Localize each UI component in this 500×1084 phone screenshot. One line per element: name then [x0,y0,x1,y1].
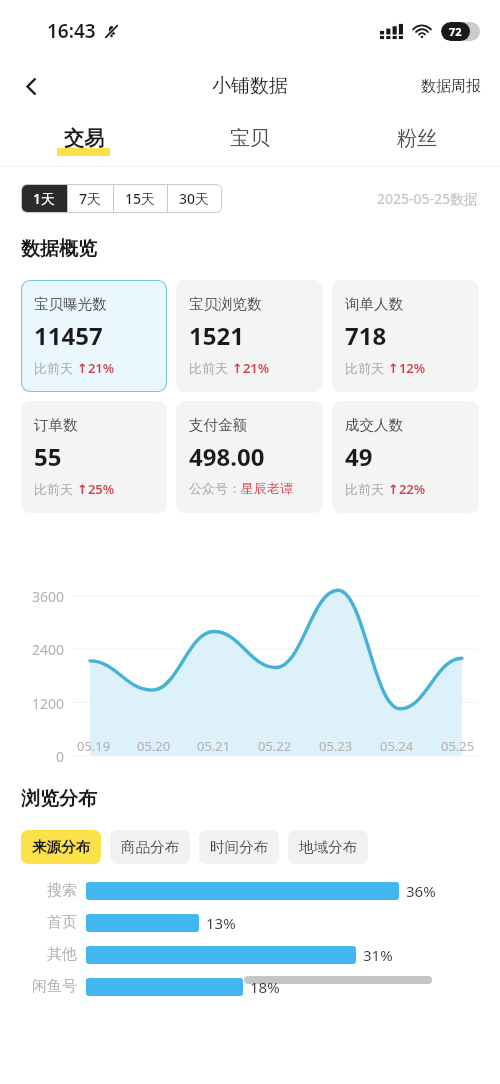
button[interactable]: 7天 [68,185,113,212]
staticText: 05.23 [319,737,353,755]
staticText: 36% [406,881,436,901]
staticText: 粉丝 [397,126,437,151]
staticText: 05.25 [441,737,475,755]
staticText: 7天 [79,189,102,208]
button[interactable]: 来源分布 [21,830,101,864]
button[interactable]: 宝贝曝光数 [21,280,167,392]
staticText: 55 [34,440,62,473]
button[interactable]: 商品分布 [110,830,190,864]
staticText: 其他 [0,945,77,964]
staticText: 小铺数据 [212,74,288,98]
staticText: 05.20 [137,737,171,755]
staticText: 闲鱼号 [0,977,77,996]
button[interactable]: 时间分布 [199,830,279,864]
staticText: 公众号： [189,480,241,496]
staticText: 比前天 [34,359,77,377]
button[interactable]: 支付金额 [176,401,323,513]
staticText: 2400 [0,640,64,659]
button[interactable]: 粉丝 [333,110,500,166]
staticText: 比前天 [345,480,388,498]
button[interactable]: 询单人数 [332,280,479,392]
staticText: 成交人数 [345,416,403,434]
button[interactable]: 数据周报 [402,67,500,106]
staticText: 数据概览 [21,237,97,261]
staticText: 比前天 [34,480,77,498]
staticText: 宝贝曝光数 [34,295,107,313]
staticText: 05.21 [197,737,231,755]
staticText: 72 [449,24,462,39]
staticText: 来源分布 [32,838,90,856]
button[interactable]: Back [8,63,54,109]
staticText: 宝贝浏览数 [189,295,262,313]
button[interactable]: 宝贝 [166,110,333,166]
staticText: 询单人数 [345,295,403,313]
staticText: 718 [345,319,387,352]
button[interactable]: 成交人数 [332,401,479,513]
staticText: 数据周报 [421,77,481,96]
staticText: 比前天 [345,359,388,377]
staticText: 支付金额 [189,416,247,434]
staticText: 498.00 [189,440,265,473]
staticText: 交易 [64,126,104,151]
staticText: 05.22 [258,737,292,755]
staticText: 18% [250,977,280,997]
staticText: 16:43 [47,18,96,44]
staticText: 宝贝 [230,126,270,151]
staticText: 30天 [179,189,210,208]
staticText: 3600 [0,587,64,606]
staticText: ↑22% [388,480,426,498]
staticText: 0 [0,747,64,766]
staticText: 时间分布 [210,838,268,856]
staticText: 比前天 [189,359,232,377]
button[interactable]: 订单数 [21,401,167,513]
staticText: 1521 [189,319,244,352]
staticText: 地域分布 [299,838,357,856]
staticText: 11457 [34,319,103,352]
staticText: 首页 [0,913,77,932]
staticText: 05.19 [77,737,111,755]
staticText: 49 [345,440,373,473]
staticText: 31% [363,945,393,965]
button[interactable]: 15天 [114,185,167,212]
staticText: 1200 [0,694,64,713]
staticText: 05.24 [380,737,414,755]
staticText: ↑21% [77,359,115,377]
staticText: ↑25% [77,480,115,498]
staticText: ↑21% [232,359,270,377]
staticText: 星辰老谭 [241,480,293,496]
staticText: ↑12% [388,359,426,377]
staticText: 15天 [125,189,156,208]
button[interactable]: 地域分布 [288,830,368,864]
staticText: 13% [206,913,236,933]
button[interactable]: 1天 [22,185,67,212]
staticText: 2025-05-25数据 [377,189,479,208]
staticText: 商品分布 [121,838,179,856]
staticText: 搜索 [0,881,77,900]
button[interactable]: 交易 [0,110,166,166]
button[interactable]: 30天 [168,185,221,212]
staticText: 1天 [33,189,56,208]
staticText: 浏览分布 [21,787,97,811]
button[interactable]: 宝贝浏览数 [176,280,323,392]
staticText: 订单数 [34,416,78,434]
